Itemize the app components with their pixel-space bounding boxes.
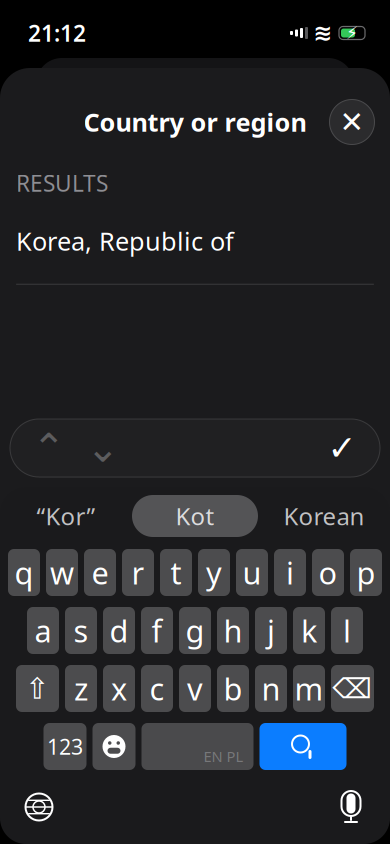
staticText: r — [131, 552, 144, 593]
button[interactable]: w — [46, 549, 78, 596]
staticText: k — [301, 610, 317, 651]
staticText: f — [151, 610, 162, 651]
staticText: Kot — [175, 500, 214, 532]
staticText: 123 — [47, 732, 83, 761]
button[interactable]: h — [217, 607, 249, 654]
button[interactable]: s — [65, 607, 97, 654]
button[interactable]: n — [255, 665, 287, 712]
staticText: o — [318, 552, 337, 593]
button[interactable]: d — [103, 607, 135, 654]
staticText: Country or region — [83, 105, 306, 139]
staticText: RESULTS — [16, 168, 108, 198]
staticText: ⌄ — [86, 425, 120, 471]
staticText: EN PL — [203, 746, 243, 766]
button[interactable]: “Kor” — [0, 495, 132, 537]
button[interactable]: c — [141, 665, 173, 712]
button[interactable]: v — [179, 665, 211, 712]
button[interactable]: q — [8, 549, 40, 596]
button[interactable]: p — [350, 549, 382, 596]
button[interactable]: i — [274, 549, 306, 596]
staticText: w — [50, 552, 74, 593]
staticText: ≋ — [313, 20, 332, 46]
button[interactable]: j — [255, 607, 287, 654]
button[interactable]: u — [236, 549, 268, 596]
button[interactable]: Delete — [331, 665, 374, 712]
staticText: u — [242, 552, 261, 593]
staticText: v — [187, 668, 203, 709]
button[interactable]: z — [65, 665, 97, 712]
button[interactable]: b — [217, 665, 249, 712]
button[interactable]: f — [141, 607, 173, 654]
staticText: q — [14, 552, 33, 593]
button[interactable]: Shift — [16, 665, 59, 712]
staticText: ✓ — [327, 428, 356, 468]
staticText: Korea, Republic of — [16, 224, 234, 258]
staticText: y — [206, 552, 222, 593]
button[interactable]: y — [198, 549, 230, 596]
button[interactable]: Search — [259, 723, 346, 770]
staticText: “Kor” — [36, 500, 95, 532]
button[interactable]: e — [84, 549, 116, 596]
button[interactable]: Space — [141, 723, 253, 770]
staticText: t — [170, 552, 181, 593]
button[interactable]: Kot — [132, 495, 258, 537]
button[interactable]: Korean — [258, 495, 390, 537]
button[interactable]: l — [331, 607, 363, 654]
button[interactable]: Done — [312, 421, 372, 475]
staticText: g — [185, 610, 204, 651]
staticText: ⚡︎ — [346, 23, 358, 43]
button[interactable]: Next field — [76, 421, 130, 475]
staticText: ⌫ — [332, 673, 372, 704]
staticText: e — [91, 552, 108, 593]
button[interactable]: a — [27, 607, 59, 654]
button[interactable]: Previous field — [22, 421, 76, 475]
staticText: ⇧ — [25, 672, 50, 705]
staticText: d — [109, 610, 128, 651]
button[interactable]: o — [312, 549, 344, 596]
staticText: z — [74, 668, 88, 709]
staticText: b — [223, 668, 242, 709]
staticText: h — [223, 610, 242, 651]
button[interactable]: Close — [322, 92, 382, 152]
button[interactable]: g — [179, 607, 211, 654]
staticText: l — [343, 610, 351, 651]
button[interactable]: 123 — [43, 723, 86, 770]
button[interactable]: t — [160, 549, 192, 596]
staticText: Korean — [283, 500, 364, 532]
staticText: c — [149, 668, 164, 709]
button[interactable]: m — [293, 665, 325, 712]
button[interactable]: r — [122, 549, 154, 596]
staticText: 21:12 — [28, 18, 86, 48]
staticText: i — [286, 552, 294, 593]
button[interactable]: Emoji — [92, 723, 135, 770]
staticText: n — [261, 668, 280, 709]
button[interactable]: Switch keyboard — [10, 780, 68, 834]
staticText: m — [294, 668, 323, 709]
button[interactable]: k — [293, 607, 325, 654]
staticText: s — [73, 610, 88, 651]
button[interactable]: x — [103, 665, 135, 712]
staticText: ⌃ — [32, 425, 66, 471]
staticText: x — [111, 668, 127, 709]
staticText: j — [267, 610, 275, 651]
staticText: ✕ — [339, 105, 364, 139]
button[interactable]: Dictate — [322, 780, 380, 834]
button[interactable]: Korea, Republic of — [0, 198, 390, 284]
staticText: p — [356, 552, 375, 593]
staticText: a — [34, 610, 51, 651]
